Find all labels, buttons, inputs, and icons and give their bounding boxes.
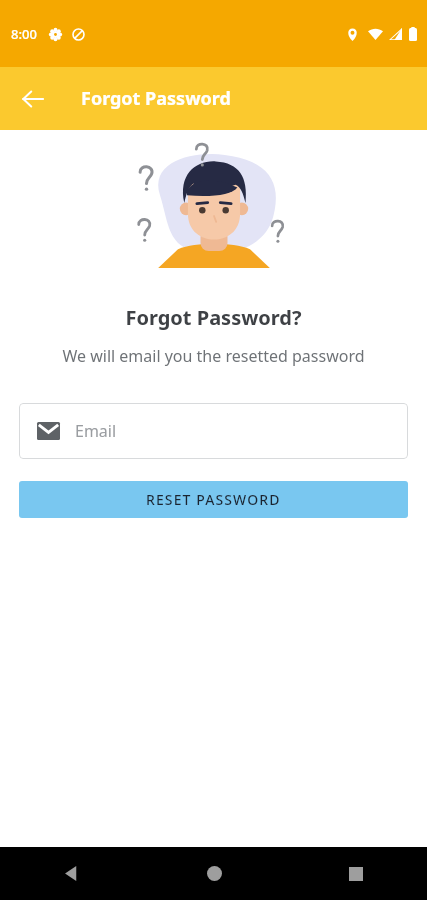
button[interactable]: Email <box>19 403 408 459</box>
staticText: Email <box>75 420 117 442</box>
button[interactable]: Back <box>0 847 143 900</box>
staticText: RESET PASSWORD <box>146 490 281 509</box>
button[interactable]: Home <box>143 847 285 900</box>
button[interactable]: Recent apps <box>285 847 427 900</box>
staticText: 8:00 <box>11 25 37 43</box>
staticText: Forgot Password <box>81 86 231 111</box>
button[interactable]: Back <box>10 76 56 122</box>
staticText: We will email you the resetted password <box>62 345 365 367</box>
staticText: Forgot Password? <box>125 304 302 331</box>
button[interactable]: RESET PASSWORD <box>19 481 408 518</box>
